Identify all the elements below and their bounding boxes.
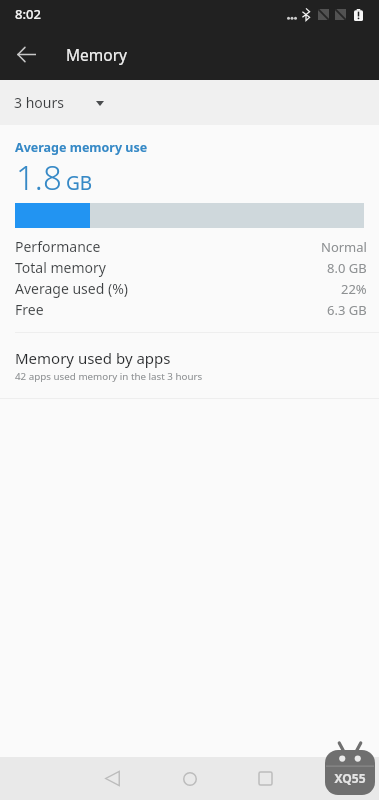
button[interactable]: Recents (244, 757, 287, 800)
staticText: 8:02 (15, 5, 41, 23)
staticText: 22% (341, 280, 367, 298)
staticText: XQ55 (334, 770, 366, 786)
staticText: 42 apps used memory in the last 3 hours (15, 370, 203, 383)
button[interactable]: Back (1, 29, 51, 79)
staticText: Performance (15, 237, 101, 256)
staticText: 3 hours (14, 93, 64, 112)
staticText: Free (15, 300, 44, 319)
staticText: 1.8 (16, 155, 62, 200)
button[interactable]: Home (168, 757, 211, 800)
staticText: Average memory use (15, 139, 148, 156)
staticText: 8.0 GB (327, 259, 367, 277)
staticText: Memory used by apps (15, 348, 171, 368)
staticText: Memory (66, 44, 127, 65)
staticText: Total memory (15, 258, 106, 277)
button[interactable]: Back (91, 757, 134, 800)
staticText: 6.3 GB (327, 301, 367, 319)
button[interactable]: 3 hours (0, 87, 118, 118)
button[interactable]: Memory used by apps (0, 333, 379, 398)
staticText: Normal (321, 238, 367, 256)
staticText: GB (66, 170, 93, 196)
staticText: Average used (%) (15, 279, 128, 298)
